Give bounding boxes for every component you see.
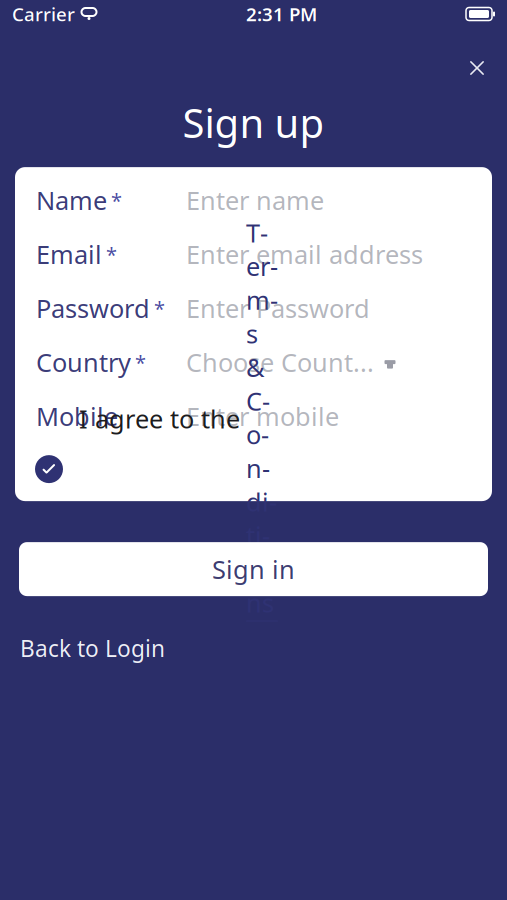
staticText: * bbox=[135, 349, 146, 375]
staticText: 2:31 PM bbox=[246, 2, 317, 26]
button[interactable]: Terms & Conditions bbox=[246, 216, 278, 621]
button[interactable]: Sign in bbox=[19, 542, 488, 596]
button[interactable]: Email bbox=[15, 227, 492, 281]
staticText: Choose Count... bbox=[186, 345, 374, 379]
staticText: Sign up bbox=[182, 96, 324, 149]
staticText: Carrier bbox=[12, 2, 75, 26]
button[interactable]: Mobile bbox=[15, 389, 492, 443]
staticText: * bbox=[154, 295, 165, 321]
staticText: I agree to the bbox=[79, 402, 240, 435]
staticText: Email bbox=[36, 237, 102, 271]
button[interactable]: Close bbox=[455, 46, 499, 90]
button[interactable]: Password bbox=[15, 281, 492, 335]
button[interactable]: Name bbox=[15, 173, 492, 227]
button[interactable]: Back to Login bbox=[20, 633, 165, 663]
staticText: * bbox=[106, 241, 117, 267]
staticText: Country bbox=[36, 345, 131, 379]
staticText: Sign in bbox=[212, 552, 295, 586]
button[interactable]: Country bbox=[15, 335, 492, 389]
staticText: * bbox=[111, 187, 122, 213]
staticText: Terms & Conditions bbox=[246, 216, 278, 619]
staticText: Mobile bbox=[36, 399, 118, 433]
staticText: Name bbox=[36, 183, 107, 217]
staticText: Enter email address bbox=[186, 237, 423, 271]
staticText: Back to Login bbox=[20, 633, 165, 663]
staticText: Enter Password bbox=[186, 291, 370, 325]
staticText: Enter mobile bbox=[186, 399, 339, 433]
staticText: Enter name bbox=[186, 183, 324, 217]
button[interactable]: I agree to the Terms and Conditions bbox=[32, 452, 66, 486]
staticText: Password bbox=[36, 291, 150, 325]
